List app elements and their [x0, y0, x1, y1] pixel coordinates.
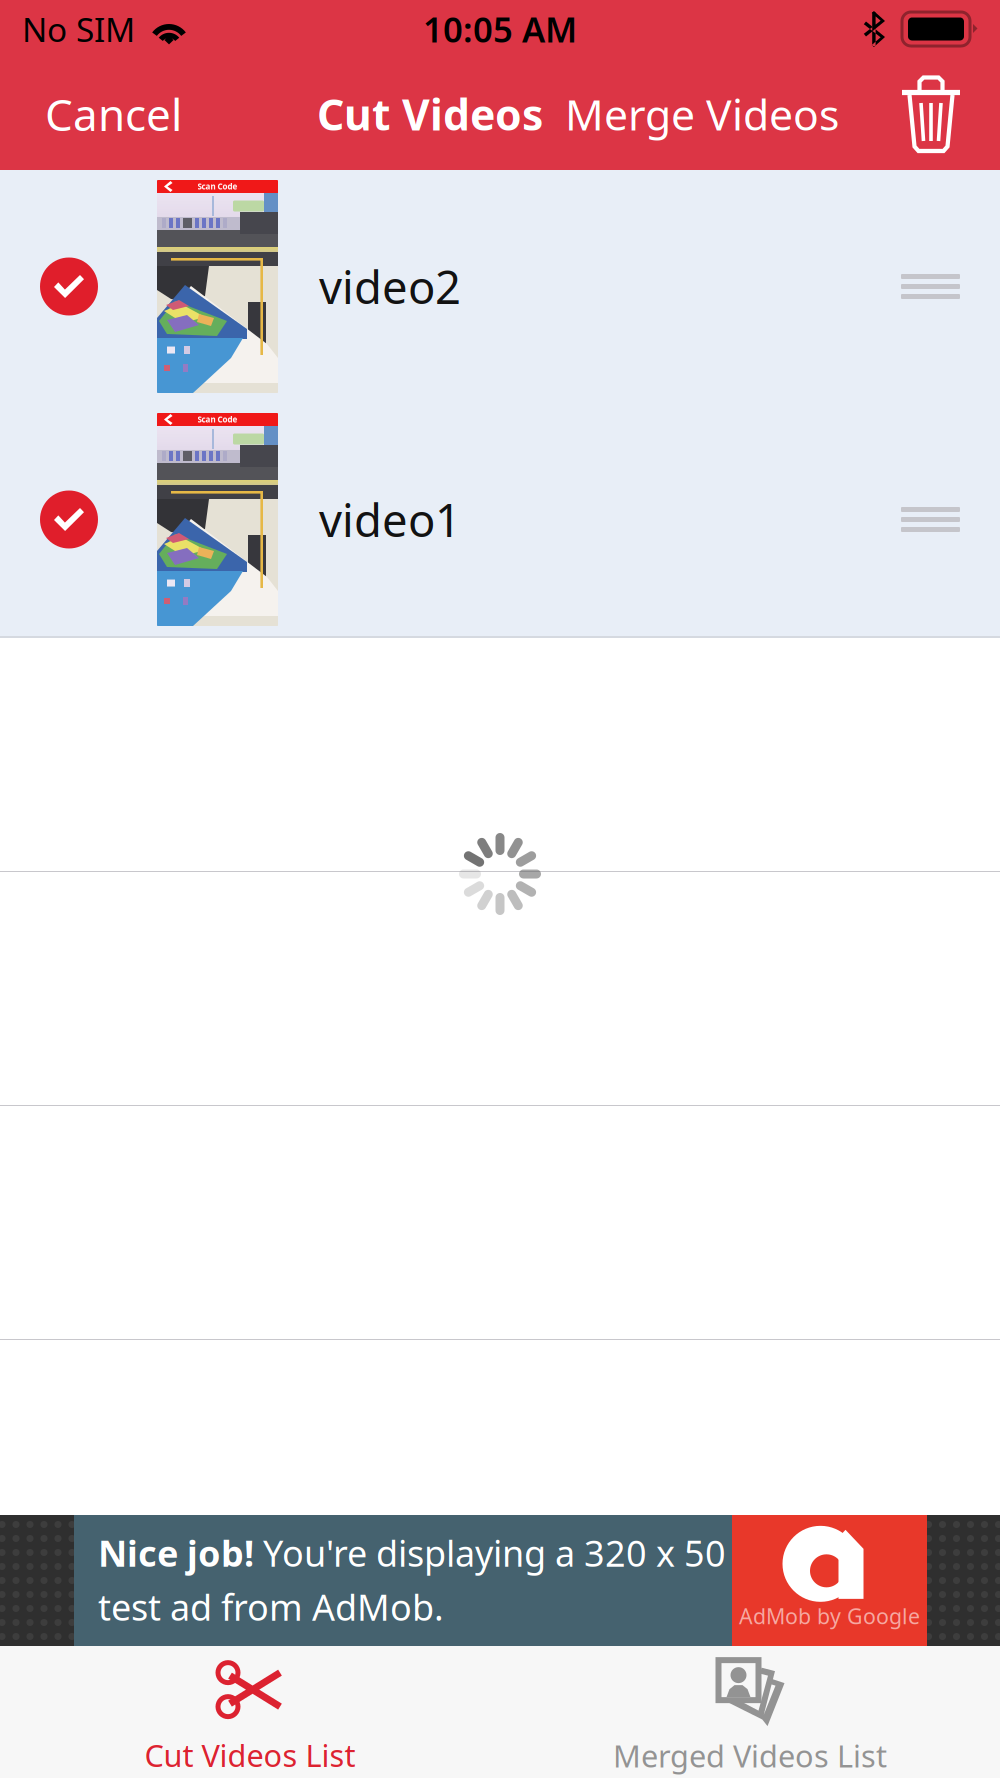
staticText: video1 [319, 489, 461, 550]
staticText: test ad from AdMob. [98, 1583, 444, 1631]
staticText: Nice job! [98, 1529, 254, 1577]
staticText: You're displaying a 320 x 50 [254, 1529, 726, 1577]
button[interactable]: Scan Code [0, 170, 1000, 403]
staticText: Scan Code [197, 181, 237, 192]
staticText: video2 [319, 256, 461, 317]
button[interactable]: Nice job! [0, 1515, 1000, 1646]
staticText: AdMob by Google [739, 1602, 920, 1630]
staticText: No SIM [22, 7, 135, 51]
button[interactable]: Cancel [45, 58, 182, 170]
staticText: Scan Code [197, 414, 237, 425]
button[interactable]: Delete [900, 58, 962, 170]
staticText: Cancel [45, 85, 182, 143]
button[interactable]: Cut Videos List [0, 1646, 500, 1778]
staticText: 10:05 AM [423, 6, 577, 52]
button[interactable]: Merged Videos List [500, 1646, 1000, 1778]
staticText: Merge Videos [565, 86, 839, 142]
staticText: Cut Videos List [144, 1735, 355, 1775]
button[interactable]: Scan Code [0, 403, 1000, 636]
staticText: Cut Videos [317, 86, 543, 142]
staticText: Merged Videos List [613, 1735, 887, 1776]
button[interactable]: Cut Videos [317, 58, 543, 170]
button[interactable]: Merge Videos [565, 58, 839, 170]
